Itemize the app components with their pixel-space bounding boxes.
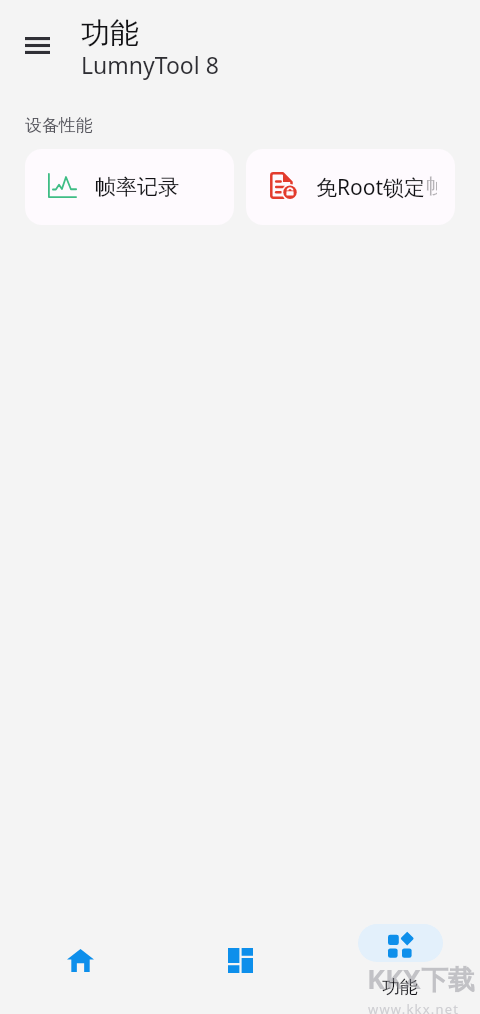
button[interactable]: 免Root锁定 xyxy=(246,149,455,225)
staticText: www.kkx.net xyxy=(368,1000,460,1014)
staticText: 功能 xyxy=(382,976,418,999)
button[interactable]: Menu xyxy=(13,21,61,69)
button[interactable]: Dashboard xyxy=(160,910,320,973)
staticText: 功能 xyxy=(81,15,139,52)
button[interactable]: 功能 xyxy=(320,910,480,999)
staticText: 设备性能 xyxy=(25,115,93,136)
button[interactable]: 帧率记录 xyxy=(25,149,234,225)
staticText: KKX下载 xyxy=(367,960,475,997)
staticText: 帧 xyxy=(426,173,437,199)
staticText: 帧率记录 xyxy=(95,174,179,200)
button[interactable]: Home xyxy=(0,910,160,972)
staticText: 免Root锁定 xyxy=(316,173,426,202)
staticText: LumnyTool 8 xyxy=(81,49,219,80)
